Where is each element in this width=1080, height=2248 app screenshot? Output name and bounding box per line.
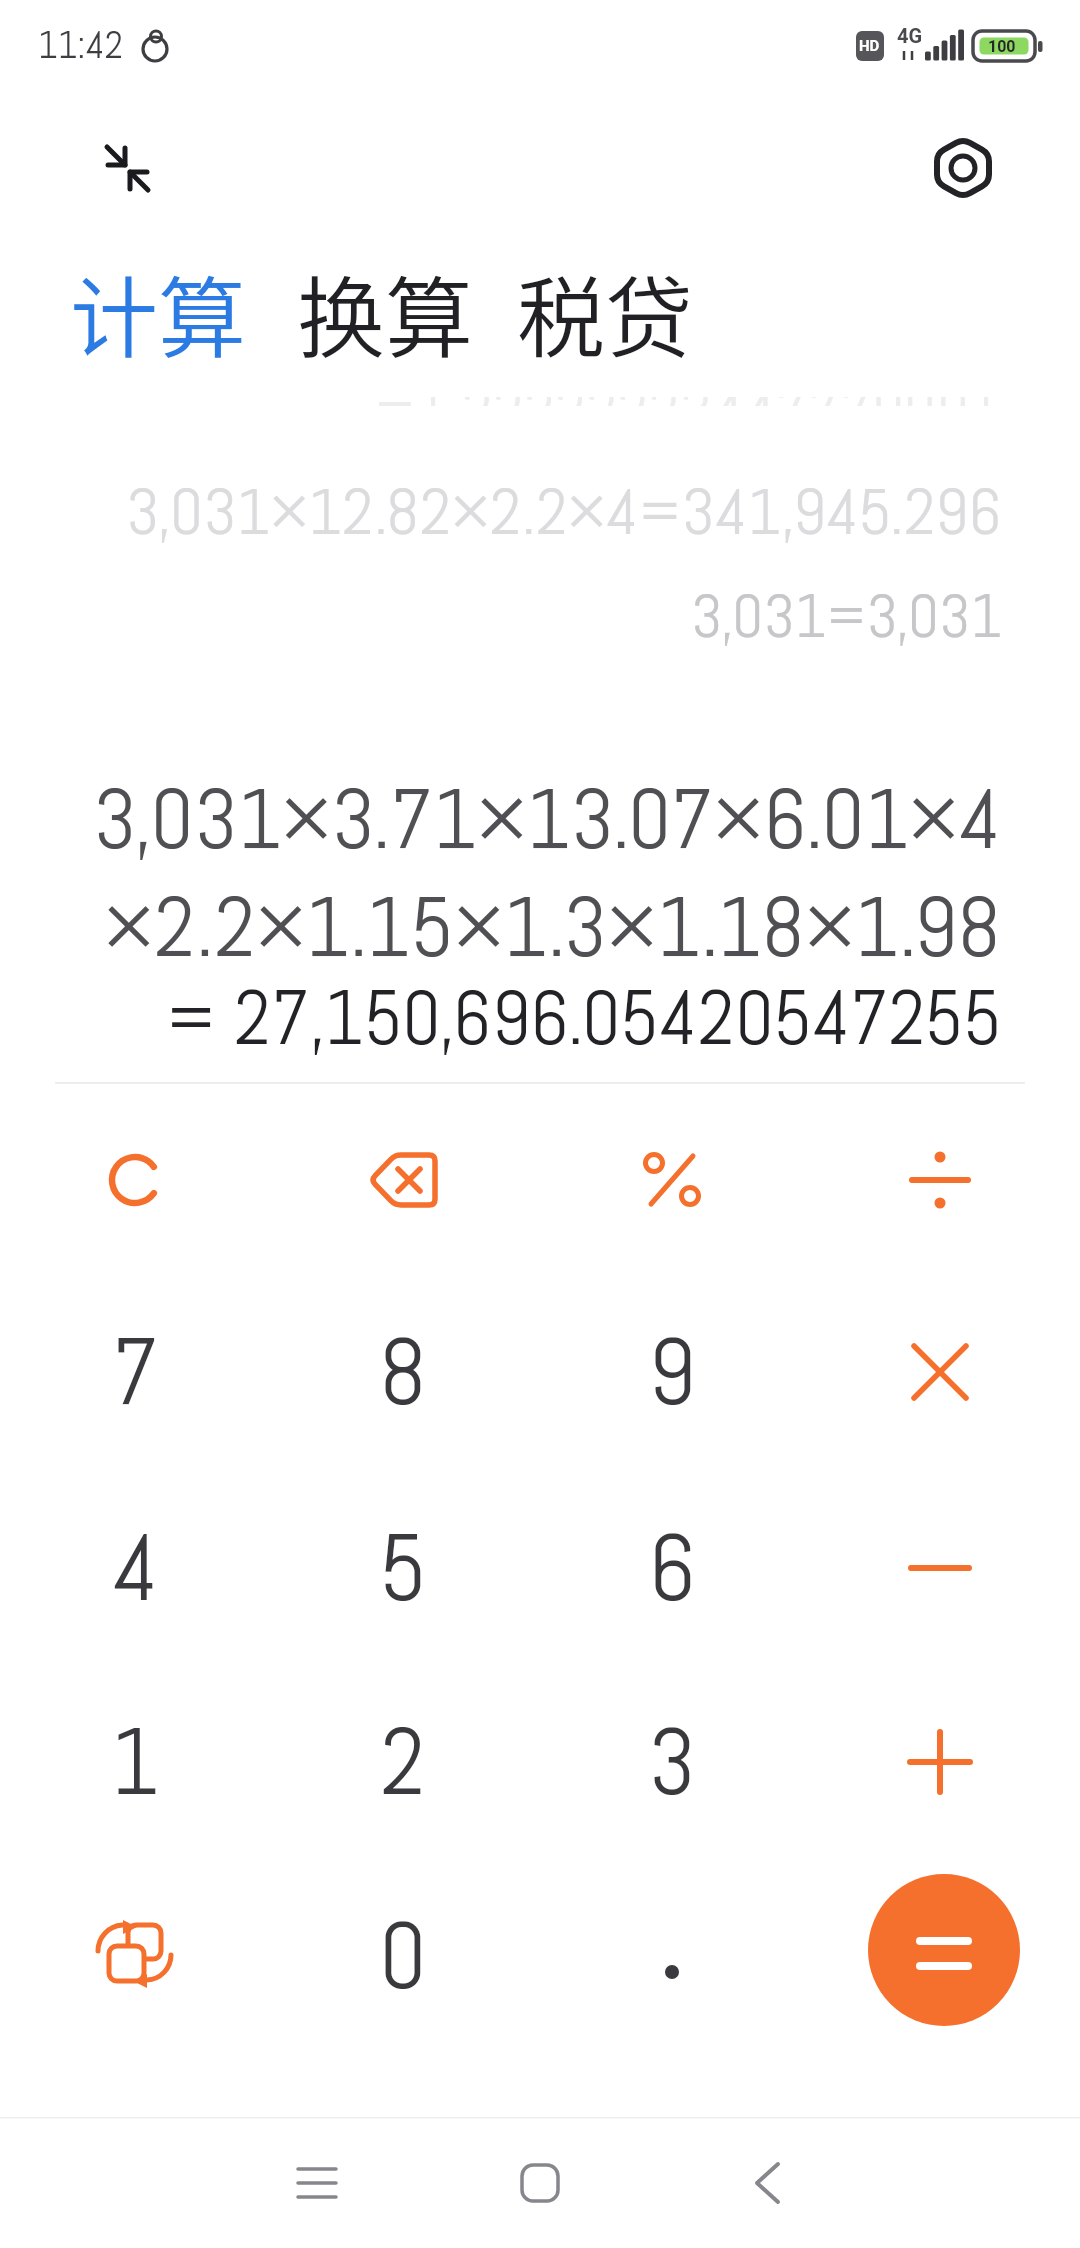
staticText: 2	[380, 1703, 426, 1822]
button[interactable]: 2	[288, 1674, 518, 1850]
button[interactable]	[480, 2128, 600, 2238]
button[interactable]	[825, 1480, 1055, 1656]
button[interactable]: 8	[288, 1284, 518, 1460]
button[interactable]	[707, 2128, 827, 2238]
staticText: = 27,150,696.05420547255	[166, 970, 1002, 1067]
button[interactable]: 9	[557, 1284, 787, 1460]
button[interactable]: 0	[288, 1868, 518, 2044]
button[interactable]: 1	[20, 1674, 250, 1850]
staticText: =1.22222223447779091	[374, 397, 1002, 406]
staticText: 6	[648, 1509, 696, 1628]
staticText: 4	[112, 1509, 159, 1628]
staticText: 3,031×3.71×13.07×6.01×4	[93, 765, 1002, 873]
staticText: 1	[111, 1703, 160, 1822]
staticText: 7	[111, 1313, 159, 1432]
staticText: 换算	[297, 248, 474, 375]
button[interactable]: 4	[20, 1480, 250, 1656]
staticText: 100	[988, 37, 1016, 56]
button[interactable]	[288, 1092, 518, 1268]
staticText: 5	[379, 1509, 427, 1628]
staticText: 8	[379, 1313, 427, 1432]
button[interactable]: 计算	[60, 246, 257, 377]
staticText: 9	[648, 1313, 696, 1432]
staticText: 3,031×12.82×2.2×4=341,945.296	[126, 470, 1002, 553]
button[interactable]	[20, 1868, 250, 2044]
button[interactable]	[921, 126, 1005, 210]
staticText: HD	[859, 37, 880, 55]
staticText: 11:42	[38, 21, 124, 69]
staticText: 3	[648, 1703, 696, 1822]
button[interactable]: 换算	[287, 246, 484, 377]
staticText: 4G	[897, 24, 923, 47]
staticText: 0	[379, 1897, 427, 2016]
staticText: ×2.2×1.15×1.3×1.18×1.98	[104, 873, 1002, 981]
staticText: 3,031=3,031	[691, 577, 1002, 655]
button[interactable]	[557, 1092, 787, 1268]
button[interactable]	[825, 1284, 1055, 1460]
button[interactable]: 6	[557, 1480, 787, 1656]
button[interactable]: 5	[288, 1480, 518, 1656]
button[interactable]	[20, 1092, 250, 1268]
button[interactable]	[825, 1674, 1055, 1850]
button[interactable]	[86, 126, 170, 210]
staticText: 税贷	[517, 248, 694, 375]
button[interactable]	[825, 1092, 1055, 1268]
button[interactable]	[868, 1874, 1020, 2026]
button[interactable]: 7	[20, 1284, 250, 1460]
button[interactable]: 3	[557, 1674, 787, 1850]
staticText: 计算	[70, 248, 247, 375]
button[interactable]: 税贷	[507, 246, 704, 377]
button[interactable]	[557, 1868, 787, 2044]
button[interactable]	[257, 2128, 377, 2238]
